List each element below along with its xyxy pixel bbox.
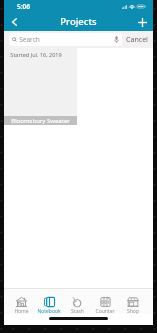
staticText: Cancel: [126, 35, 148, 45]
button[interactable]: Shop: [119, 296, 146, 314]
staticText: Home: [14, 308, 29, 314]
button[interactable]: Stash: [63, 296, 91, 314]
button[interactable]: Notebook: [35, 296, 63, 314]
button[interactable]: Home: [7, 296, 35, 314]
staticText: Notebook: [37, 308, 61, 314]
button[interactable]: Search: [9, 33, 122, 46]
staticText: Stash: [71, 308, 84, 314]
staticText: Counter: [95, 308, 115, 314]
button[interactable]: Back: [4, 13, 24, 31]
button[interactable]: Cancel: [125, 33, 149, 47]
button[interactable]: Started Jul. 16, 2019: [4, 48, 77, 125]
staticText: Started Jul. 16, 2019: [10, 51, 62, 58]
staticText: Shop: [127, 308, 139, 314]
button[interactable]: Add project: [131, 13, 153, 31]
button[interactable]: Counter: [91, 296, 119, 314]
staticText: 5:06: [17, 2, 30, 11]
staticText: Bloomsbury Sweater: [11, 117, 70, 125]
staticText: Projects: [60, 15, 97, 28]
staticText: Search: [19, 35, 40, 44]
